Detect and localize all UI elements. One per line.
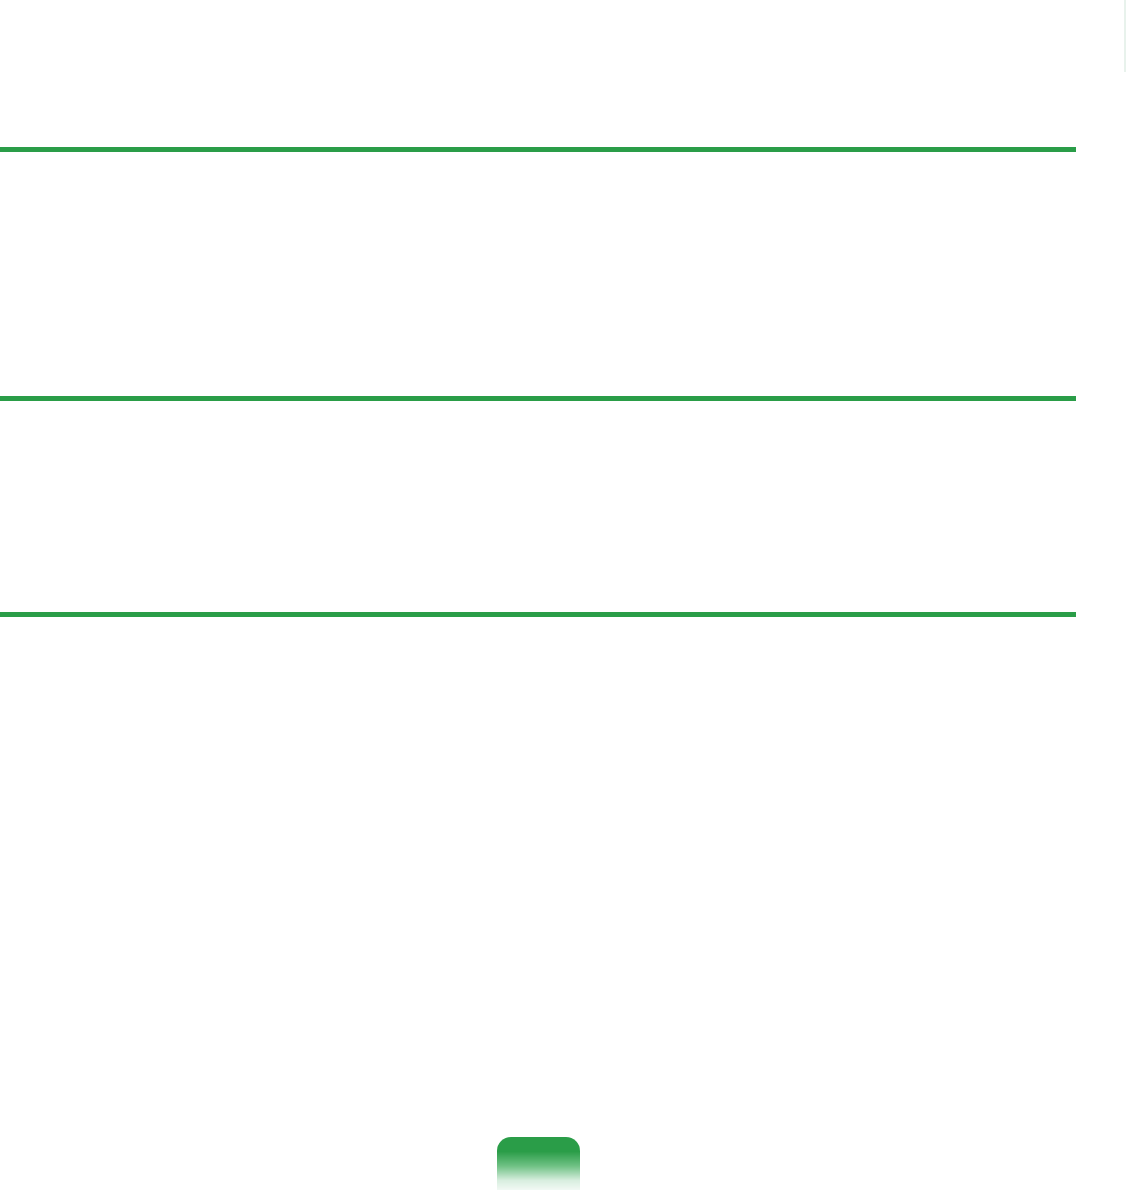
button[interactable]: Primary action xyxy=(497,1137,580,1190)
